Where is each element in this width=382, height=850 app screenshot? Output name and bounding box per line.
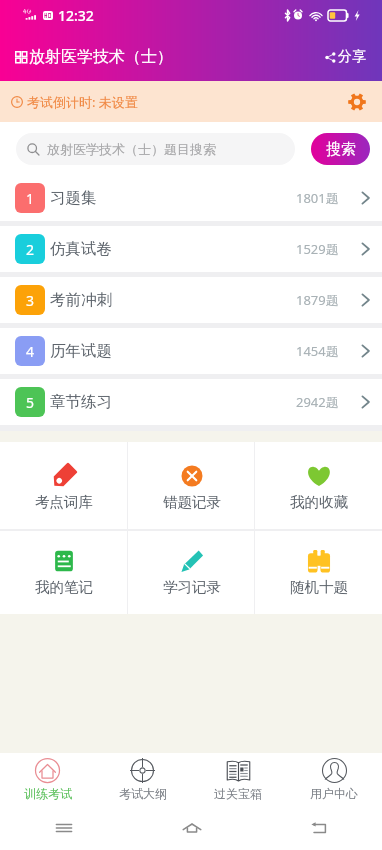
staticText: 考试大纲 [119, 786, 167, 801]
button[interactable]: 考点词库 [0, 442, 128, 529]
staticText: 考点词库 [35, 493, 93, 511]
staticText: 历年试题 [50, 341, 112, 361]
button[interactable]: 我的收藏 [255, 442, 382, 529]
staticText: 考试倒计时: 未设置 [27, 93, 138, 111]
button[interactable]: 5 [0, 379, 382, 425]
button[interactable]: 分享 [321, 42, 370, 72]
staticText: 用户中心 [310, 786, 358, 801]
staticText: 4 [26, 342, 35, 361]
button[interactable]: 搜索 [311, 133, 370, 165]
staticText: 1801题 [296, 189, 339, 207]
staticText: 随机十题 [290, 578, 348, 596]
button[interactable]: 训练考试 [0, 753, 95, 806]
staticText: 训练考试 [24, 786, 72, 801]
staticText: 1 [26, 189, 35, 208]
button[interactable]: Home [128, 806, 255, 850]
button[interactable]: 我的笔记 [0, 531, 128, 614]
button[interactable]: 1 [0, 175, 382, 221]
button[interactable]: 2 [0, 226, 382, 272]
staticText: 仿真试卷 [50, 239, 112, 259]
staticText: 3 [26, 291, 35, 310]
staticText: 5 [26, 393, 35, 412]
staticText: 12:32 [58, 6, 94, 25]
staticText: 学习记录 [163, 578, 221, 596]
staticText: 过关宝箱 [214, 786, 262, 801]
staticText: 2942题 [296, 393, 339, 411]
staticText: 放射医学技术（士） [29, 47, 173, 67]
button[interactable]: 4 [0, 328, 382, 374]
staticText: 我的收藏 [290, 493, 348, 511]
staticText: 2 [26, 240, 35, 259]
button[interactable]: 设置倒计时 [342, 87, 372, 117]
button[interactable]: 放射医学技术（士）题目搜索 [16, 133, 295, 165]
staticText: 考前冲刺 [50, 290, 112, 310]
staticText: 错题记录 [163, 493, 221, 511]
button[interactable]: 3 [0, 277, 382, 323]
button[interactable]: 随机十题 [255, 531, 382, 614]
staticText: 搜索 [326, 140, 356, 159]
button[interactable]: Back [255, 806, 382, 850]
button[interactable]: Menu [0, 806, 128, 850]
staticText: 习题集 [50, 188, 97, 208]
staticText: 分享 [338, 48, 366, 66]
staticText: 章节练习 [50, 392, 112, 412]
button[interactable]: 学习记录 [128, 531, 255, 614]
staticText: 1529题 [296, 240, 339, 258]
button[interactable]: 用户中心 [286, 753, 382, 806]
staticText: 放射医学技术（士）题目搜索 [47, 141, 216, 157]
staticText: 我的笔记 [35, 578, 93, 596]
staticText: 1454题 [296, 342, 339, 360]
button[interactable]: 过关宝箱 [190, 753, 286, 806]
staticText: 1879题 [296, 291, 339, 309]
button[interactable]: 错题记录 [128, 442, 255, 529]
button[interactable]: 考试大纲 [95, 753, 190, 806]
